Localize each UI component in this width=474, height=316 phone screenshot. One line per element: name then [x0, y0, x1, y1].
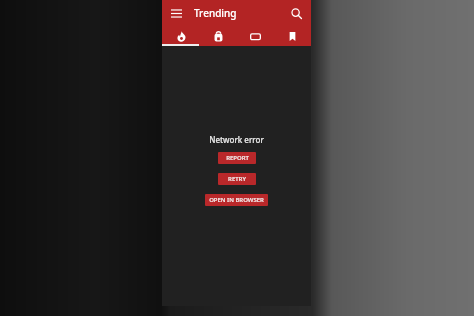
button[interactable]: Trending [162, 26, 200, 46]
staticText: REPORT [226, 154, 249, 162]
button[interactable]: Channels [237, 26, 274, 46]
staticText: Trending [194, 6, 237, 20]
staticText: OPEN IN BROWSER [209, 196, 264, 204]
button[interactable]: Open navigation menu [166, 3, 186, 23]
button[interactable]: Search [286, 3, 306, 23]
button[interactable]: OPEN IN BROWSER [205, 194, 268, 206]
button[interactable]: Subscriptions [200, 26, 237, 46]
button[interactable]: Bookmarks [274, 26, 311, 46]
staticText: Network error [209, 134, 264, 145]
button[interactable]: REPORT [218, 152, 256, 164]
button[interactable]: RETRY [218, 173, 256, 185]
staticText: RETRY [228, 175, 246, 183]
